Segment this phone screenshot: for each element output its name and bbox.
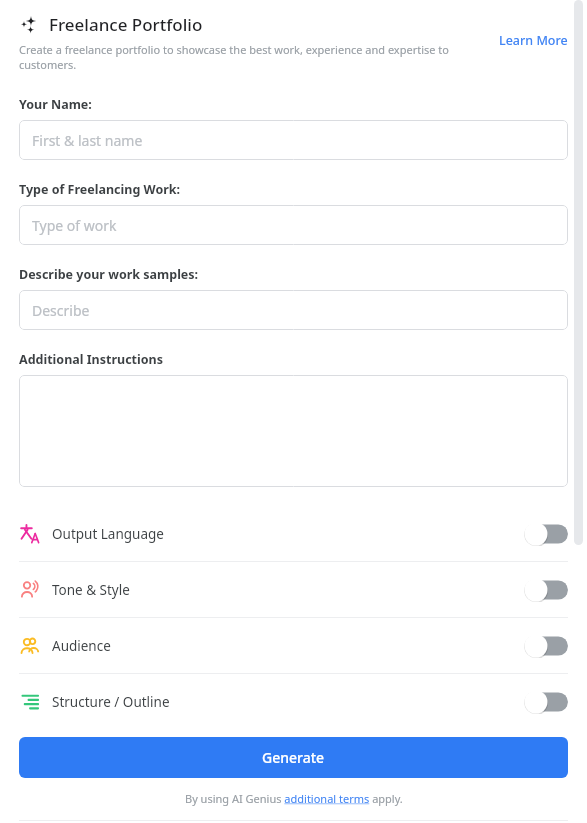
staticText: Type of Freelancing Work: — [19, 181, 181, 198]
staticText: By using AI Genius additional terms appl… — [185, 791, 403, 806]
button[interactable]: Describe — [19, 290, 568, 330]
staticText: First & last name — [32, 131, 143, 150]
staticText: Generate — [262, 748, 325, 767]
button[interactable]: Toggle — [524, 634, 568, 658]
button[interactable] — [19, 375, 568, 487]
button[interactable]: Tone & Style — [0, 562, 587, 617]
button[interactable]: Generate — [19, 737, 568, 778]
staticText: Freelance Portfolio — [49, 13, 203, 36]
staticText: Describe your work samples: — [19, 266, 199, 283]
button[interactable]: Structure / Outline — [0, 674, 587, 729]
button[interactable]: Learn More — [480, 30, 587, 51]
staticText: Structure / Outline — [52, 693, 170, 711]
staticText: Learn More — [499, 32, 568, 49]
staticText: Output Language — [52, 525, 164, 543]
staticText: Additional Instructions — [19, 351, 163, 368]
button[interactable]: Toggle — [524, 522, 568, 546]
staticText: Audience — [52, 637, 111, 655]
button[interactable]: Audience — [0, 618, 587, 673]
staticText: Type of work — [32, 216, 117, 235]
button[interactable]: Output Language — [0, 506, 587, 561]
button[interactable]: Toggle — [524, 578, 568, 602]
button[interactable]: First & last name — [19, 120, 568, 160]
staticText: Your Name: — [19, 96, 92, 113]
staticText: Create a freelance portfolio to showcase… — [19, 42, 458, 72]
staticText: Describe — [32, 301, 90, 320]
staticText: Tone & Style — [52, 581, 130, 599]
button[interactable]: Type of work — [19, 205, 568, 245]
button[interactable]: Toggle — [524, 690, 568, 714]
